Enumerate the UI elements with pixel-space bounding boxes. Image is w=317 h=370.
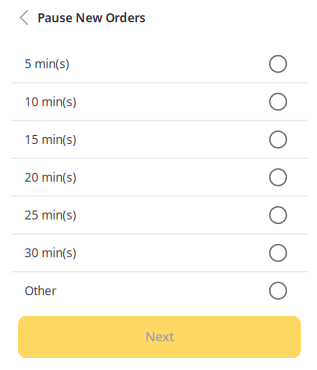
button[interactable]: Next [18,316,301,358]
staticText: 10 min(s) [24,93,76,109]
button[interactable]: 10 min(s) [0,83,317,121]
button[interactable]: 30 min(s) [0,235,317,272]
button[interactable]: 25 min(s) [0,197,317,235]
staticText: 30 min(s) [24,245,76,261]
staticText: Next [145,327,174,345]
staticText: 25 min(s) [24,207,76,223]
staticText: Other [24,282,56,298]
button[interactable]: Other [0,272,317,310]
staticText: 5 min(s) [24,56,69,72]
staticText: 15 min(s) [24,131,76,147]
button[interactable]: 20 min(s) [0,159,317,197]
staticText: 20 min(s) [24,169,76,185]
button[interactable]: Back [0,0,37,35]
staticText: Pause New Orders [37,9,145,25]
button[interactable]: 5 min(s) [0,46,317,83]
button[interactable]: 15 min(s) [0,121,317,159]
